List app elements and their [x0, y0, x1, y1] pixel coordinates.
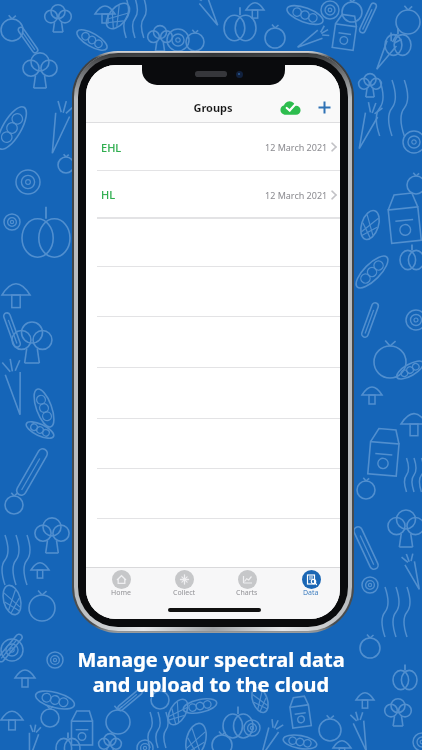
button[interactable]: EHL: [86, 123, 340, 171]
button[interactable]: [280, 101, 301, 115]
button[interactable]: Data: [285, 570, 337, 598]
staticText: HL: [101, 187, 116, 202]
button[interactable]: Home: [95, 570, 147, 598]
button[interactable]: Charts: [221, 570, 273, 598]
staticText: Data: [303, 588, 319, 598]
staticText: Groups: [86, 100, 340, 115]
staticText: Collect: [173, 588, 196, 598]
staticText: Home: [111, 588, 131, 598]
button[interactable]: [313, 96, 336, 119]
staticText: 12 March 2021: [265, 189, 328, 201]
button[interactable]: HL: [86, 171, 340, 218]
staticText: Charts: [236, 588, 258, 598]
staticText: EHL: [101, 140, 122, 155]
button[interactable]: Collect: [158, 570, 210, 598]
staticText: 12 March 2021: [265, 141, 328, 153]
staticText: and upload to the cloud: [0, 671, 422, 698]
staticText: Manage your spectral data: [0, 646, 422, 673]
